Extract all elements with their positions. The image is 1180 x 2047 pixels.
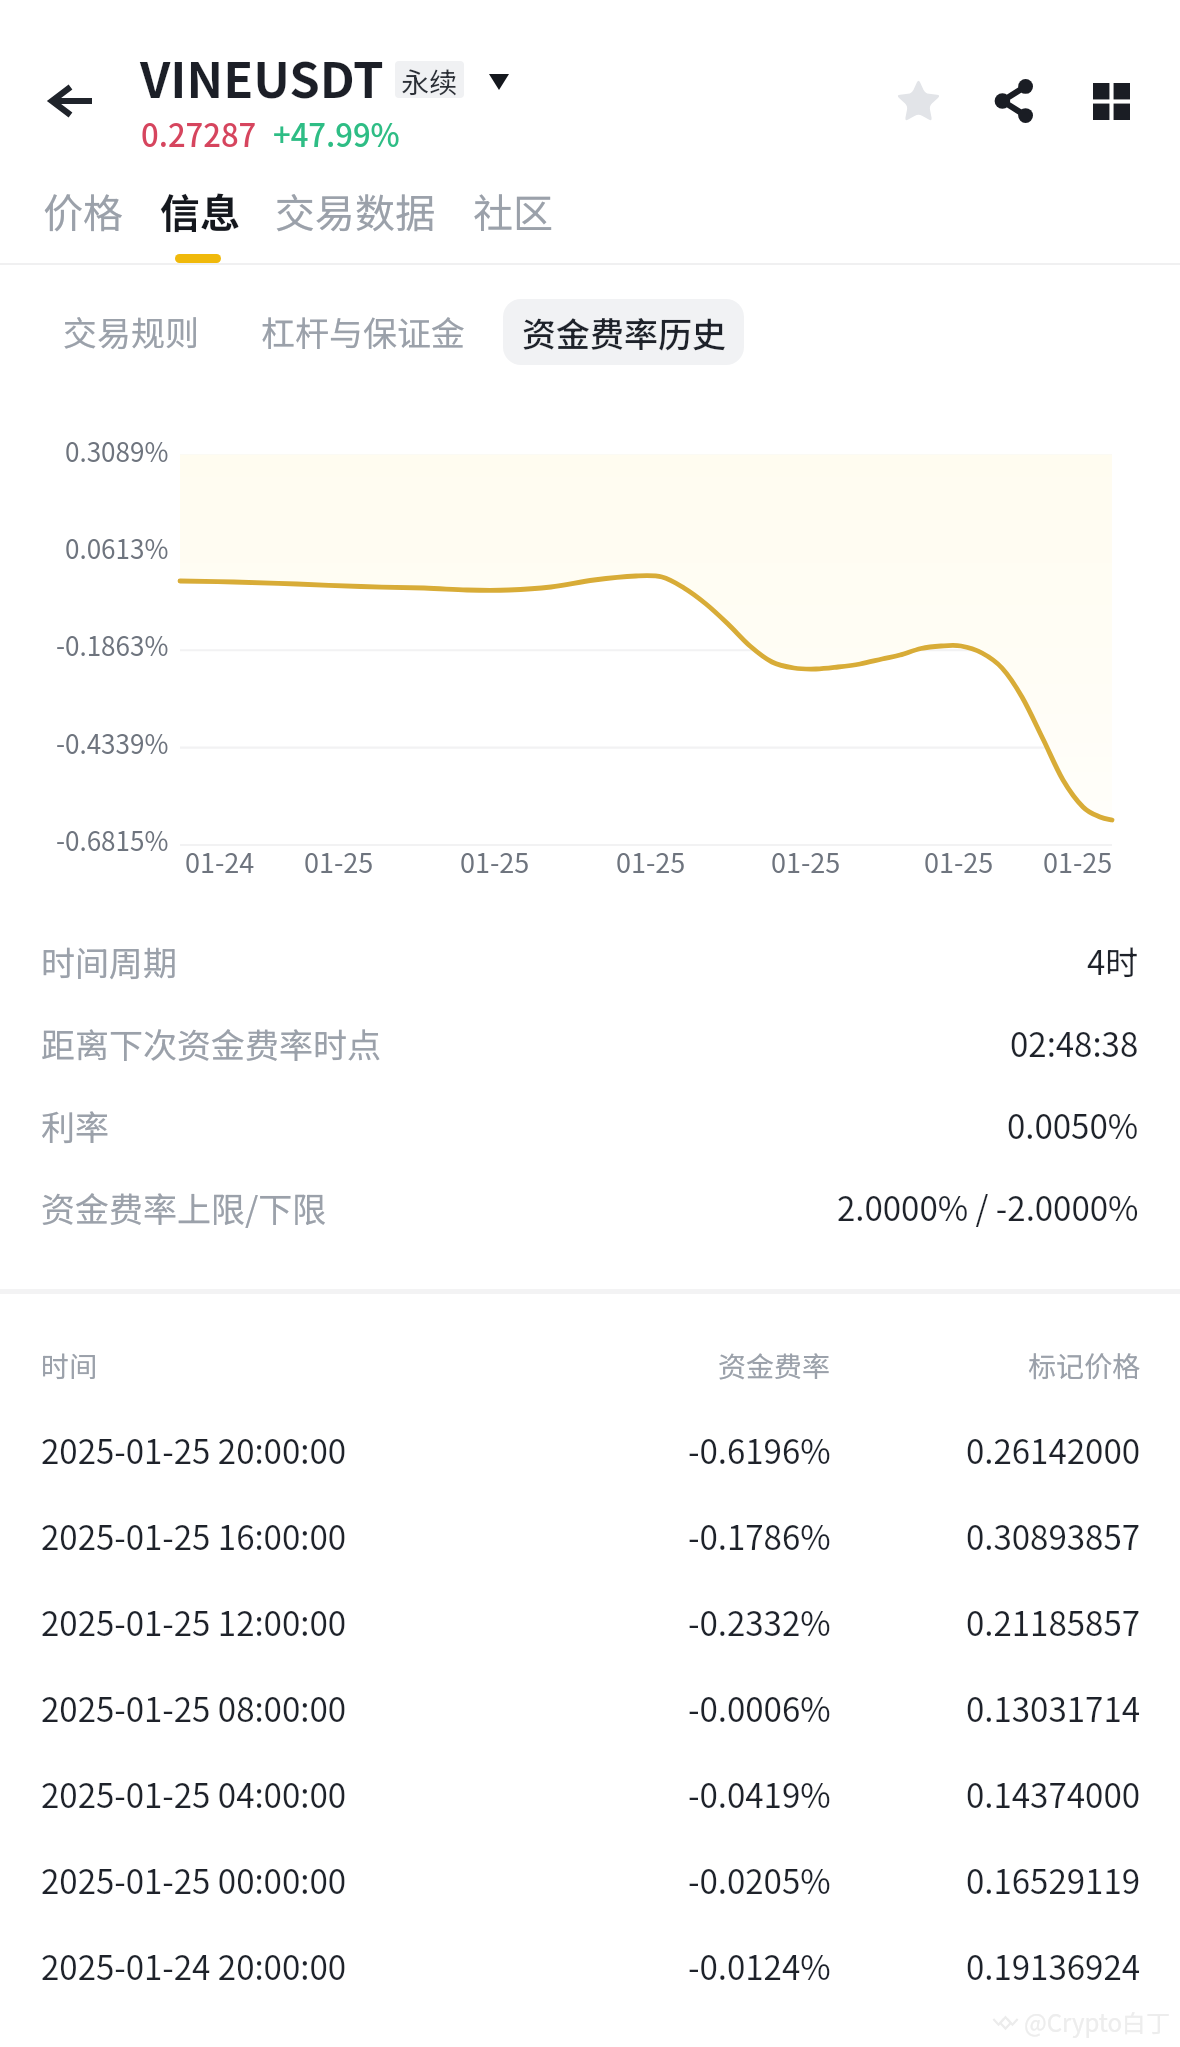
button[interactable]: 交易数据 [261,174,449,248]
button[interactable]: 杠杆与保证金 [239,292,487,371]
button[interactable]: 交易规则 [41,292,221,371]
button[interactable]: 社区 [459,174,567,248]
button[interactable]: 信息 [146,174,254,248]
staticText: 01-25 [616,842,686,881]
staticText: 0.16529119 [966,1856,1141,1904]
staticText: 0.0613% [65,529,169,567]
staticText: VINEUSDT [140,41,384,112]
button[interactable]: Share [969,56,1059,146]
staticText: 时间周期 [41,937,177,986]
staticText: 2025-01-25 16:00:00 [41,1512,347,1560]
staticText: 2.0000% / -2.0000% [837,1183,1139,1231]
staticText: 交易数据 [275,182,435,240]
staticText: -0.6196% [688,1426,831,1474]
staticText: 2025-01-24 20:00:00 [41,1942,347,1990]
staticText: 利率 [41,1101,109,1150]
button[interactable]: 2025-01-25 04:00:00 [0,1751,1180,1837]
button[interactable]: More options [1066,56,1156,146]
staticText: 交易规则 [63,307,199,356]
staticText: -0.0205% [688,1856,831,1904]
staticText: 时间 [41,1345,98,1386]
button[interactable]: 2025-01-25 00:00:00 [0,1837,1180,1923]
staticText: 2025-01-25 12:00:00 [41,1598,347,1646]
staticText: 信息 [160,182,240,240]
staticText: 2025-01-25 00:00:00 [41,1856,347,1904]
button[interactable]: 2025-01-24 20:00:00 [0,1923,1180,2009]
button[interactable]: Switch contract [479,64,519,100]
staticText: 0.14374000 [966,1770,1141,1818]
staticText: 01-24 [185,842,255,881]
staticText: 4时 [1087,937,1139,985]
staticText: 资金费率 [718,1345,831,1386]
staticText: 社区 [473,182,553,240]
staticText: -0.1863% [56,626,169,664]
staticText: 01-25 [771,842,841,881]
staticText: 2025-01-25 04:00:00 [41,1770,347,1818]
staticText: 0.19136924 [966,1942,1141,1990]
staticText: 资金费率历史 [522,308,726,357]
staticText: 01-25 [460,842,530,881]
staticText: @Crypto白丁 [1024,2004,1170,2039]
staticText: -0.0124% [688,1942,831,1990]
staticText: 距离下次资金费率时点 [41,1019,381,1068]
button[interactable]: 2025-01-25 12:00:00 [0,1579,1180,1665]
staticText: -0.0419% [688,1770,831,1818]
staticText: 0.3089% [65,432,169,470]
staticText: -0.6815% [56,821,169,859]
staticText: 标记价格 [1028,1345,1141,1386]
staticText: -0.1786% [688,1512,831,1560]
button[interactable]: 资金费率历史 [503,299,744,365]
staticText: 2025-01-25 20:00:00 [41,1426,347,1474]
button[interactable]: Favorite [873,56,963,146]
staticText: 0.13031714 [966,1684,1141,1732]
staticText: 2025-01-25 08:00:00 [41,1684,347,1732]
staticText: 0.30893857 [966,1512,1141,1560]
staticText: -0.4339% [56,724,169,762]
staticText: +47.99% [273,111,400,156]
button[interactable]: 价格 [29,174,137,248]
staticText: 价格 [43,182,123,240]
staticText: 02:48:38 [1010,1019,1139,1067]
staticText: 01-25 [1043,842,1113,881]
button[interactable]: 2025-01-25 16:00:00 [0,1493,1180,1579]
staticText: 0.27287 [141,111,257,156]
staticText: 杠杆与保证金 [261,307,465,356]
staticText: -0.0006% [688,1684,831,1732]
staticText: 0.0050% [1007,1101,1139,1149]
staticText: -0.2332% [688,1598,831,1646]
staticText: 资金费率上限/下限 [41,1183,327,1232]
staticText: 0.21185857 [966,1598,1141,1646]
staticText: 01-25 [924,842,994,881]
button[interactable]: Back [24,53,120,149]
button[interactable]: 2025-01-25 20:00:00 [0,1407,1180,1493]
staticText: 0.26142000 [966,1426,1141,1474]
button[interactable]: 2025-01-25 08:00:00 [0,1665,1180,1751]
staticText: 永续 [401,61,458,98]
staticText: 01-25 [304,842,374,881]
